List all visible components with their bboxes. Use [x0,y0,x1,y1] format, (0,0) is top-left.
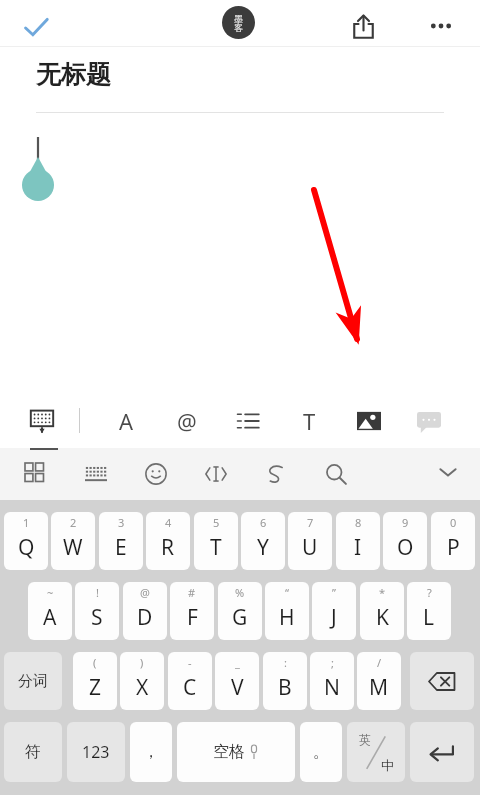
staticText: ? [427,585,432,600]
button[interactable]: G [218,582,262,640]
staticText: J [331,603,337,632]
button[interactable]: Done [14,6,58,50]
button[interactable]: Q [4,512,48,570]
button[interactable]: Profile [222,6,255,39]
staticText: 符 [25,742,41,762]
button[interactable]: X [120,652,164,710]
button[interactable]: More options [419,4,463,48]
staticText: D [137,603,153,632]
staticText: 5 [213,515,220,530]
button[interactable]: Edit text [196,454,236,494]
staticText: G [232,603,248,632]
staticText: K [376,603,389,632]
staticText: _ [235,655,240,670]
button[interactable]: A [28,582,72,640]
staticText: @ [140,585,150,600]
button[interactable]: Switch language [347,722,405,782]
staticText: 9 [402,515,409,530]
button[interactable]: T [194,512,238,570]
button[interactable]: Apps [16,454,56,494]
button[interactable]: P [431,512,475,570]
staticText: 8 [355,515,362,530]
button[interactable]: K [360,582,404,640]
button[interactable]: 123 [67,722,125,782]
button[interactable]: B [263,652,307,710]
button[interactable]: Space [177,722,295,782]
staticText: Q [18,533,35,562]
button[interactable]: 符 [4,722,62,782]
staticText: A [119,406,134,436]
button[interactable]: N [310,652,354,710]
button[interactable]: Search [316,454,356,494]
staticText: ~ [47,585,54,600]
staticText: Y [257,533,269,562]
staticText: R [161,533,175,562]
button[interactable]: 分词 [4,652,62,710]
button[interactable]: Hide keyboard [20,399,64,443]
button[interactable]: Z [73,652,117,710]
staticText: O [397,533,414,562]
button[interactable]: F [170,582,214,640]
staticText: 1 [23,515,30,530]
button[interactable]: R [146,512,190,570]
staticText: A [43,603,57,632]
staticText: 墨 客 [234,13,243,33]
button[interactable]: Numbered list [226,399,270,443]
button[interactable]: Backspace [410,652,474,710]
staticText: I [354,533,362,562]
staticText: W [63,533,83,562]
button[interactable]: V [215,652,259,710]
button[interactable]: M [357,652,401,710]
staticText: 3 [118,515,125,530]
button[interactable]: Emoji [136,454,176,494]
staticText: 分词 [18,672,48,691]
staticText: V [231,673,244,702]
button[interactable]: O [383,512,427,570]
staticText: M [369,673,389,702]
staticText: F [187,603,198,632]
button[interactable]: 。 [300,722,342,782]
button[interactable]: W [51,512,95,570]
button[interactable]: Comments [407,399,451,443]
staticText: 中 [381,757,394,773]
button[interactable]: Collapse keyboard [428,452,468,492]
button[interactable]: E [99,512,143,570]
staticText: % [235,585,245,600]
staticText: * [379,585,386,600]
staticText: - [188,655,192,670]
button[interactable]: H [265,582,309,640]
button[interactable]: Insert image [347,399,391,443]
staticText: C [183,673,197,702]
button[interactable]: D [123,582,167,640]
staticText: : [284,655,287,670]
button[interactable]: U [288,512,332,570]
button[interactable]: Keyboard layout [76,454,116,494]
staticText: 。 [313,742,329,762]
button[interactable]: Y [241,512,285,570]
button[interactable]: T [287,399,331,443]
staticText: N [324,673,340,702]
staticText: / [377,655,382,670]
button[interactable]: ， [130,722,172,782]
staticText: 7 [307,515,314,530]
button[interactable]: S [75,582,119,640]
staticText: 空格 [213,742,245,762]
button[interactable]: L [407,582,451,640]
button[interactable]: A [104,399,148,443]
button[interactable]: C [168,652,212,710]
staticText: 0 [450,515,457,530]
staticText: U [302,533,318,562]
staticText: 6 [260,515,267,530]
staticText: ; [331,655,334,670]
button[interactable]: @ [165,399,209,443]
staticText: ) [140,655,144,670]
button[interactable]: Enter [410,722,474,782]
button[interactable]: I [336,512,380,570]
staticText: 无标题 [36,59,111,90]
button[interactable]: J [312,582,356,640]
staticText: T [303,406,316,436]
staticText: H [279,603,295,632]
staticText: B [278,673,292,702]
button[interactable]: Share [341,4,385,48]
button[interactable]: Clipboard [256,454,296,494]
